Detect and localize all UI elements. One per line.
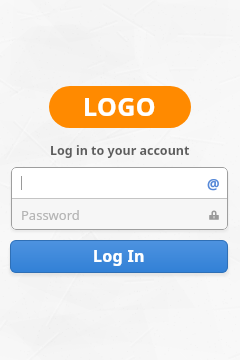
staticText: Log in to your account	[50, 142, 190, 159]
staticText: Password	[21, 206, 80, 224]
button[interactable]: Log In	[10, 240, 228, 273]
staticText: LOGO	[83, 89, 157, 123]
button[interactable]: LOGO	[49, 86, 191, 128]
button[interactable]: Email	[11, 167, 228, 198]
staticText: Log In	[93, 245, 145, 267]
button[interactable]: Password	[11, 199, 228, 230]
other: Password	[208, 209, 220, 221]
other: Email	[204, 174, 222, 192]
staticText: @	[207, 174, 220, 192]
